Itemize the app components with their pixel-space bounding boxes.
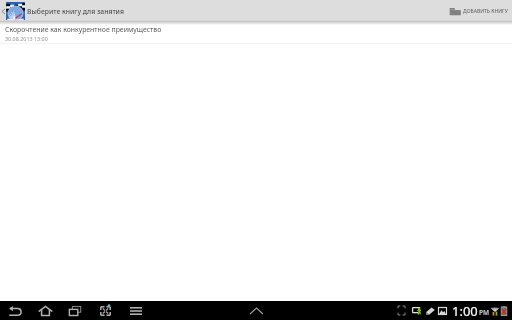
staticText: Выберите книгу для занятия [27,7,124,16]
button[interactable]: ДОБАВИТЬ КНИГУ [446,0,512,22]
staticText: 30.08.2013 13:00 [5,35,48,42]
button[interactable]: Navigate up [0,0,25,22]
button[interactable]: Home [37,303,53,319]
button[interactable]: Back [7,303,23,319]
button[interactable]: Status [398,301,512,320]
staticText: PM [479,308,490,317]
button[interactable]: Menu [128,303,144,319]
staticText: Скорочтение как конкурентное преимуществ… [5,25,162,34]
staticText: ДОБАВИТЬ КНИГУ [463,8,508,15]
button[interactable]: Screenshot [97,303,113,319]
staticText: 1:00 [452,302,478,320]
button[interactable]: Скорочтение как конкурентное преимуществ… [0,22,512,43]
button[interactable]: Expand status bar [247,303,265,319]
button[interactable]: Recents [67,303,83,319]
